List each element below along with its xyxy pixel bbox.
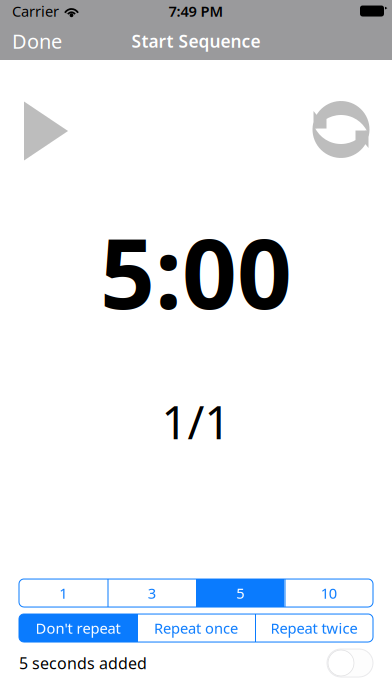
staticText: 1/1 <box>161 391 230 452</box>
button[interactable]: Repeat twice <box>255 614 373 642</box>
staticText: Repeat once <box>154 618 238 638</box>
staticText: Don't repeat <box>35 618 120 638</box>
staticText: 5 <box>236 583 244 603</box>
button[interactable]: Play <box>0 91 84 170</box>
button[interactable]: 3 <box>107 579 196 607</box>
button[interactable]: 5 <box>196 579 284 607</box>
button[interactable]: 10 <box>284 579 373 607</box>
staticText: 3 <box>148 583 156 603</box>
staticText: 10 <box>321 583 337 603</box>
button[interactable]: 5 seconds added <box>327 649 373 677</box>
button[interactable]: 1 <box>19 579 107 607</box>
staticText: Done <box>12 28 62 54</box>
staticText: Repeat twice <box>270 618 357 638</box>
staticText: 1 <box>59 583 67 603</box>
staticText: Start Sequence <box>131 29 260 52</box>
staticText: 7:49 PM <box>168 1 223 21</box>
button[interactable]: Don't repeat <box>19 614 137 642</box>
button[interactable]: Done <box>0 22 72 60</box>
staticText: Carrier <box>12 1 59 21</box>
button[interactable]: Repeat <box>295 91 392 171</box>
staticText: 5:00 <box>100 208 292 335</box>
staticText: 5 seconds added <box>19 652 147 674</box>
button[interactable]: Repeat once <box>137 614 255 642</box>
